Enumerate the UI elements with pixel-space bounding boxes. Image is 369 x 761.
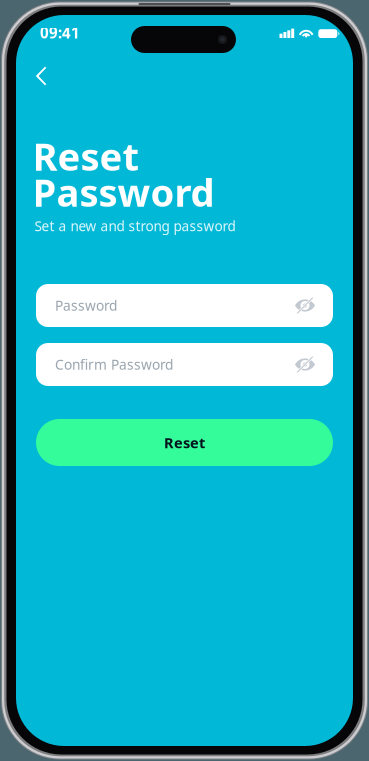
staticText: Reset [33,130,140,182]
staticText: Password [33,166,215,218]
staticText: Password [55,296,117,315]
staticText: Set a new and strong password [35,217,236,235]
staticText: 09:41 [40,22,80,43]
button[interactable]: Show Confirm Password [288,343,322,386]
staticText: Reset [164,433,205,452]
button[interactable]: Reset [36,419,333,466]
button[interactable]: Back [24,59,58,93]
button[interactable]: Show Password [288,284,322,327]
staticText: Confirm Password [55,355,173,374]
